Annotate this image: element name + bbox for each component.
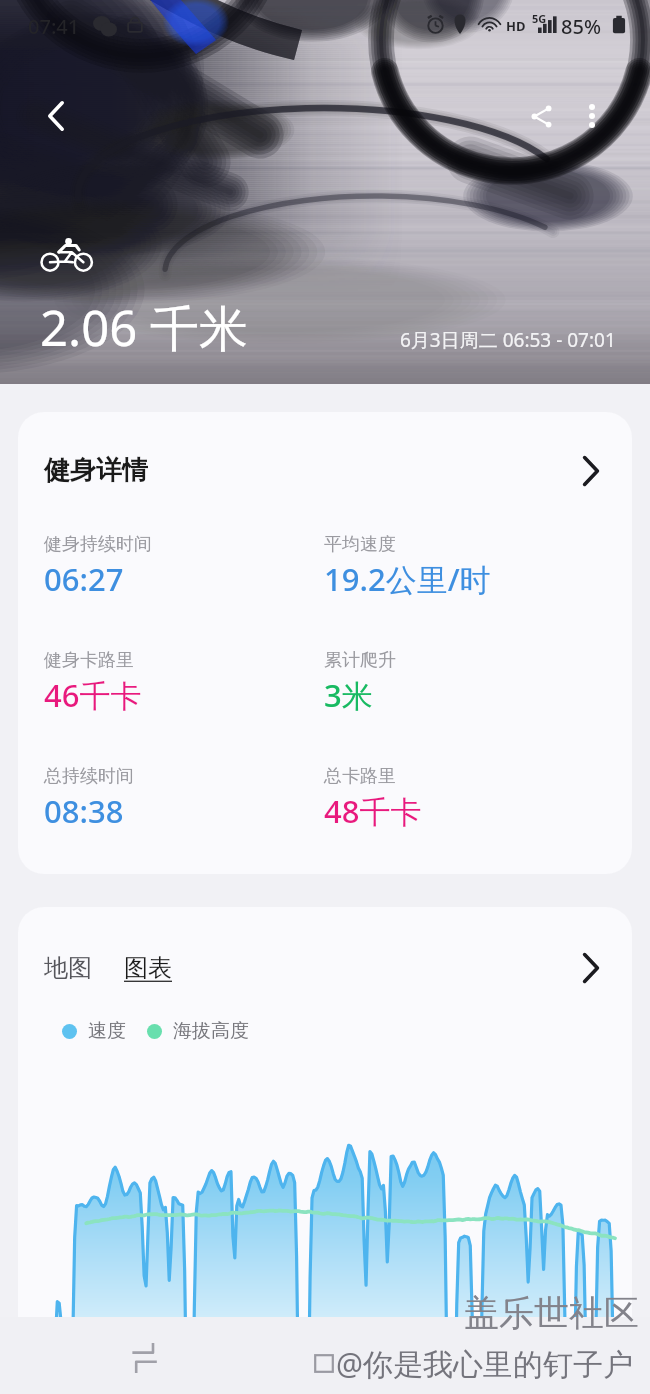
button[interactable]: 健身详情	[18, 412, 632, 874]
button[interactable]: Recents	[132, 1342, 174, 1380]
button[interactable]: Share	[514, 89, 568, 143]
staticText: 5G	[532, 11, 547, 26]
staticText: @你是我心里的钉子户	[336, 1343, 633, 1384]
staticText: 平均速度	[324, 533, 396, 556]
staticText: 累计爬升	[324, 649, 396, 672]
staticText: 海拔高度	[173, 1019, 249, 1043]
staticText: 6月3日周二 06:53 - 07:01	[400, 327, 616, 353]
staticText: 地图	[44, 953, 92, 983]
staticText: 2.06 千米	[40, 294, 248, 361]
staticText: 07:41	[28, 13, 80, 40]
staticText: 总卡路里	[324, 765, 396, 788]
staticText: 健身卡路里	[44, 649, 134, 672]
button[interactable]: More options	[565, 89, 619, 143]
staticText: HD	[506, 17, 526, 35]
staticText: 盖乐世社区	[464, 1291, 639, 1335]
button[interactable]: Back	[29, 89, 83, 143]
staticText: 06:27	[44, 558, 124, 600]
staticText: 图表	[124, 953, 172, 983]
staticText: 3米	[324, 674, 373, 716]
staticText: 总持续时间	[44, 765, 134, 788]
staticText: 速度	[88, 1019, 126, 1043]
button[interactable]: 图表	[124, 949, 172, 987]
staticText: 08:38	[44, 790, 124, 832]
staticText: 19.2公里/时	[324, 558, 491, 600]
staticText: 48千卡	[324, 790, 422, 832]
staticText: 85%	[561, 13, 601, 40]
staticText: 46千卡	[44, 674, 142, 716]
staticText: 健身持续时间	[44, 533, 152, 556]
button[interactable]: 地图	[44, 949, 92, 987]
staticText: 健身详情	[44, 454, 148, 487]
